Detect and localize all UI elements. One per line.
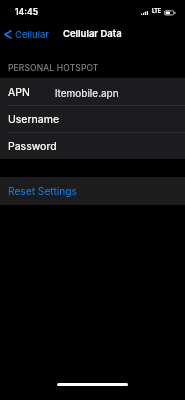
- staticText: Cellular Data: [63, 28, 122, 39]
- button[interactable]: Username: [0, 105, 185, 132]
- staticText: Cellular: [15, 29, 49, 40]
- staticText: Reset Settings: [8, 185, 77, 197]
- button[interactable]: APN: [0, 78, 185, 105]
- button[interactable]: Password: [0, 132, 185, 159]
- staticText: Username: [8, 113, 60, 126]
- staticText: Password: [8, 140, 57, 153]
- staticText: ltemobile.apn: [55, 87, 119, 99]
- staticText: APN: [8, 86, 30, 99]
- button[interactable]: Cellular: [0, 24, 55, 46]
- staticText: 14:45: [15, 7, 38, 17]
- button[interactable]: Reset Settings: [0, 177, 185, 205]
- staticText: LTE: [152, 8, 161, 15]
- staticText: PERSONAL HOTSPOT: [8, 63, 99, 73]
